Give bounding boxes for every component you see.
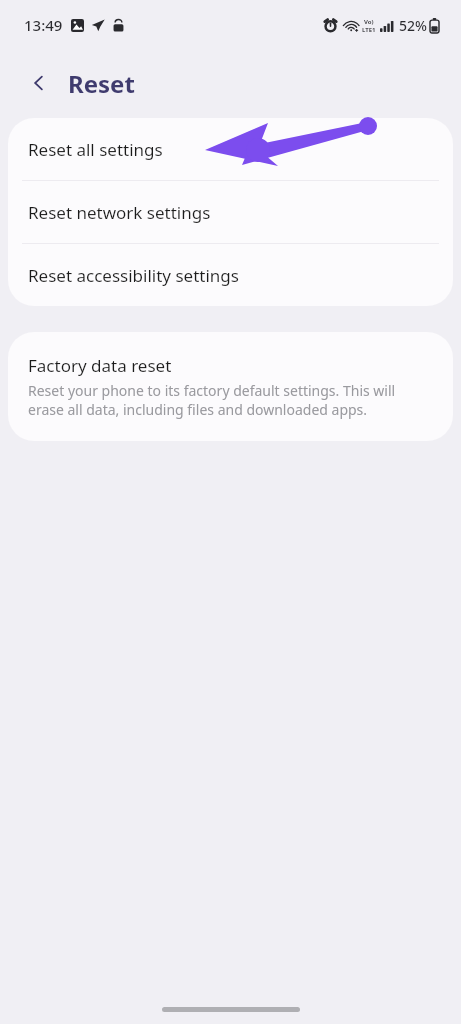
staticText: Reset all settings <box>28 138 163 161</box>
staticText: 13:49 <box>24 15 63 35</box>
button[interactable]: Factory data reset <box>8 332 453 441</box>
button[interactable]: Reset all settings <box>8 118 453 180</box>
staticText: LTE1 <box>362 26 376 34</box>
staticText: Factory data reset <box>28 354 172 377</box>
button[interactable]: Reset network settings <box>8 181 453 243</box>
staticText: Reset your phone to its factory default … <box>28 381 431 419</box>
staticText: 52% <box>399 16 427 35</box>
staticText: Vo) <box>364 18 374 26</box>
staticText: Reset <box>68 67 135 100</box>
staticText: Reset accessibility settings <box>28 264 239 287</box>
staticText: Reset network settings <box>28 201 211 224</box>
button[interactable]: Reset accessibility settings <box>8 244 453 306</box>
button[interactable]: Back <box>22 66 56 100</box>
